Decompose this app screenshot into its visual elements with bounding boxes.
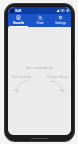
button[interactable]: Settings [50, 14, 71, 27]
staticText: Settings [55, 21, 66, 25]
staticText: Chart [36, 21, 44, 25]
other: Chart [38, 15, 43, 20]
button[interactable]: Chart [29, 14, 50, 27]
other: Records [16, 15, 21, 20]
staticText: No recordings [26, 65, 53, 70]
staticText: Start recording [12, 75, 31, 79]
staticText: 9:41 [15, 8, 22, 13]
button[interactable]: Records [8, 14, 29, 27]
staticText: Change settings [47, 75, 68, 79]
staticText: Records [13, 21, 24, 25]
other: Settings [58, 15, 63, 20]
